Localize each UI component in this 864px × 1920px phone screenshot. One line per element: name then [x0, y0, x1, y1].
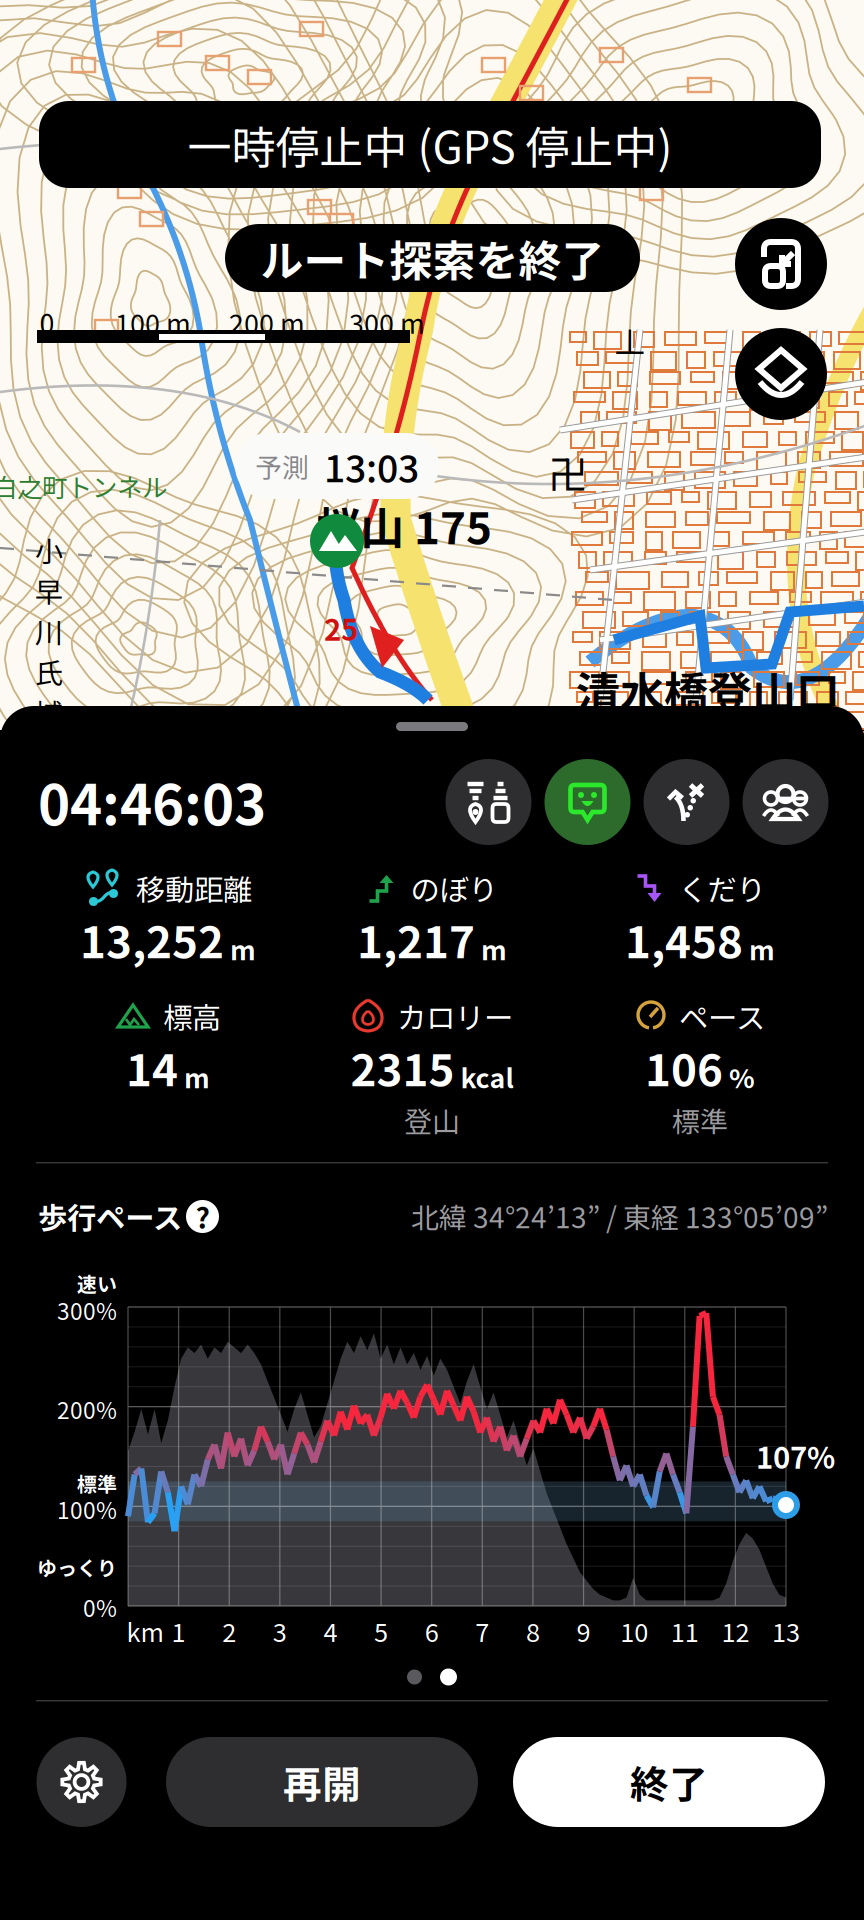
- staticText: 1,217: [357, 907, 475, 971]
- staticText: 標準: [672, 1100, 728, 1140]
- staticText: 4: [323, 1613, 337, 1649]
- staticText: 8: [526, 1613, 540, 1649]
- staticText: カロリー: [397, 995, 513, 1037]
- staticText: 12: [721, 1613, 749, 1649]
- button[interactable]: 表示を縮小: [735, 218, 827, 310]
- staticText: 卍: [548, 443, 588, 501]
- staticText: ルート探索を終了: [260, 227, 604, 289]
- staticText: 11: [671, 1613, 699, 1649]
- staticText: 04:46:03: [38, 761, 266, 841]
- staticText: km: [126, 1613, 163, 1649]
- staticText: 氏: [35, 651, 63, 692]
- staticText: m: [184, 1057, 210, 1096]
- button[interactable]: 計測設定: [445, 759, 531, 845]
- staticText: 城: [35, 692, 63, 732]
- button[interactable]: ルート探索を終了: [225, 224, 640, 292]
- staticText: 7: [475, 1613, 489, 1649]
- staticText: 2: [222, 1613, 236, 1649]
- staticText: 3: [273, 1613, 287, 1649]
- staticText: 北緯 34°24’13” / 東経 133°05’09”: [411, 1196, 828, 1236]
- staticText: 移動距離: [136, 867, 252, 909]
- staticText: のぼり: [410, 867, 497, 909]
- button[interactable]: 終了: [513, 1737, 825, 1827]
- staticText: 9: [576, 1613, 590, 1649]
- staticText: 0%: [83, 1591, 117, 1623]
- staticText: 歩行ペース: [38, 1195, 182, 1237]
- staticText: 標高: [163, 995, 221, 1037]
- button[interactable]: メンバー: [742, 759, 828, 845]
- staticText: 0: [39, 303, 54, 341]
- staticText: 登山: [404, 1100, 460, 1140]
- staticText: ペース: [679, 995, 765, 1037]
- staticText: 300 m: [349, 303, 425, 341]
- staticText: 2315: [350, 1035, 454, 1099]
- staticText: m: [749, 929, 775, 968]
- staticText: 6: [425, 1613, 439, 1649]
- staticText: 速い: [77, 1268, 117, 1297]
- button[interactable]: 歩行ペースについて: [186, 1200, 219, 1233]
- button[interactable]: 一時停止中 (GPS 停止中): [39, 101, 821, 188]
- button[interactable]: 活動メモ: [544, 759, 630, 845]
- staticText: 107%: [756, 1435, 835, 1477]
- staticText: m: [481, 929, 507, 968]
- staticText: 再開: [283, 1754, 361, 1810]
- staticText: 200 m: [229, 303, 305, 341]
- staticText: 1: [172, 1613, 186, 1649]
- staticText: ⊥: [612, 315, 647, 365]
- staticText: 標準: [77, 1468, 117, 1497]
- staticText: 10: [620, 1613, 648, 1649]
- staticText: 予測: [255, 447, 309, 485]
- staticText: 早: [35, 570, 63, 611]
- staticText: %: [729, 1057, 755, 1096]
- staticText: 13:03: [324, 439, 419, 493]
- staticText: 桜山 175: [316, 493, 492, 557]
- staticText: 13,252: [80, 907, 224, 971]
- staticText: m: [230, 929, 256, 968]
- staticText: 14: [126, 1035, 178, 1099]
- staticText: 25: [324, 607, 358, 649]
- staticText: 100 m: [115, 303, 191, 341]
- staticText: 300%: [57, 1294, 117, 1326]
- staticText: 200%: [57, 1393, 117, 1425]
- staticText: ゆっくり: [37, 1552, 117, 1581]
- staticText: 13: [772, 1613, 800, 1649]
- staticText: kcal: [460, 1057, 513, 1096]
- staticText: 100%: [57, 1493, 117, 1525]
- button[interactable]: ルート解除: [643, 759, 729, 845]
- button[interactable]: 設定: [36, 1737, 127, 1827]
- staticText: 一時停止中 (GPS 停止中): [187, 113, 672, 176]
- staticText: 清水橋登山口: [576, 658, 840, 722]
- staticText: 終了: [630, 1754, 708, 1810]
- staticText: 1,458: [625, 907, 743, 971]
- button[interactable]: 地図レイヤー: [735, 328, 827, 420]
- staticText: 5: [374, 1613, 388, 1649]
- staticText: くだり: [678, 867, 765, 909]
- button[interactable]: 再開: [166, 1737, 478, 1827]
- staticText: 小: [35, 530, 63, 570]
- staticText: 白之町トンネル: [0, 468, 167, 504]
- staticText: 106: [645, 1035, 723, 1099]
- staticText: ?: [195, 1196, 209, 1237]
- staticText: 川: [35, 611, 63, 651]
